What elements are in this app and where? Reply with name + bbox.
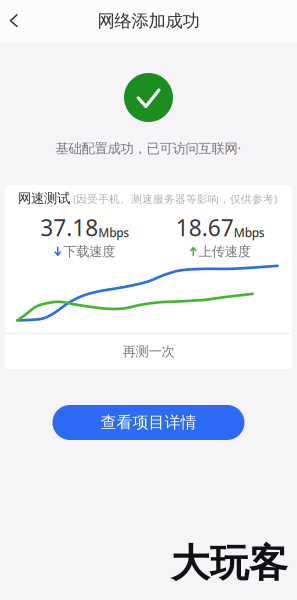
- staticText: 18.67: [176, 212, 234, 242]
- staticText: 上传速度: [199, 243, 251, 260]
- staticText: Mbps: [234, 224, 265, 240]
- staticText: Mbps: [98, 224, 129, 240]
- staticText: 查看项目详情: [100, 413, 196, 432]
- staticText: 再测一次: [122, 343, 174, 360]
- staticText: (因受手机、测速服务器等影响，仅供参考): [73, 192, 277, 206]
- staticText: 网络添加成功: [97, 10, 199, 32]
- button[interactable]: 再测一次: [5, 334, 292, 369]
- button[interactable]: 返回: [0, 0, 44, 42]
- staticText: 网速测试: [18, 190, 70, 206]
- staticText: 37.18: [40, 212, 98, 242]
- staticText: 下载速度: [63, 243, 115, 260]
- staticText: 大玩客: [171, 539, 288, 587]
- button[interactable]: 查看项目详情: [52, 405, 244, 440]
- staticText: 基础配置成功，已可访问互联网·: [55, 139, 241, 157]
